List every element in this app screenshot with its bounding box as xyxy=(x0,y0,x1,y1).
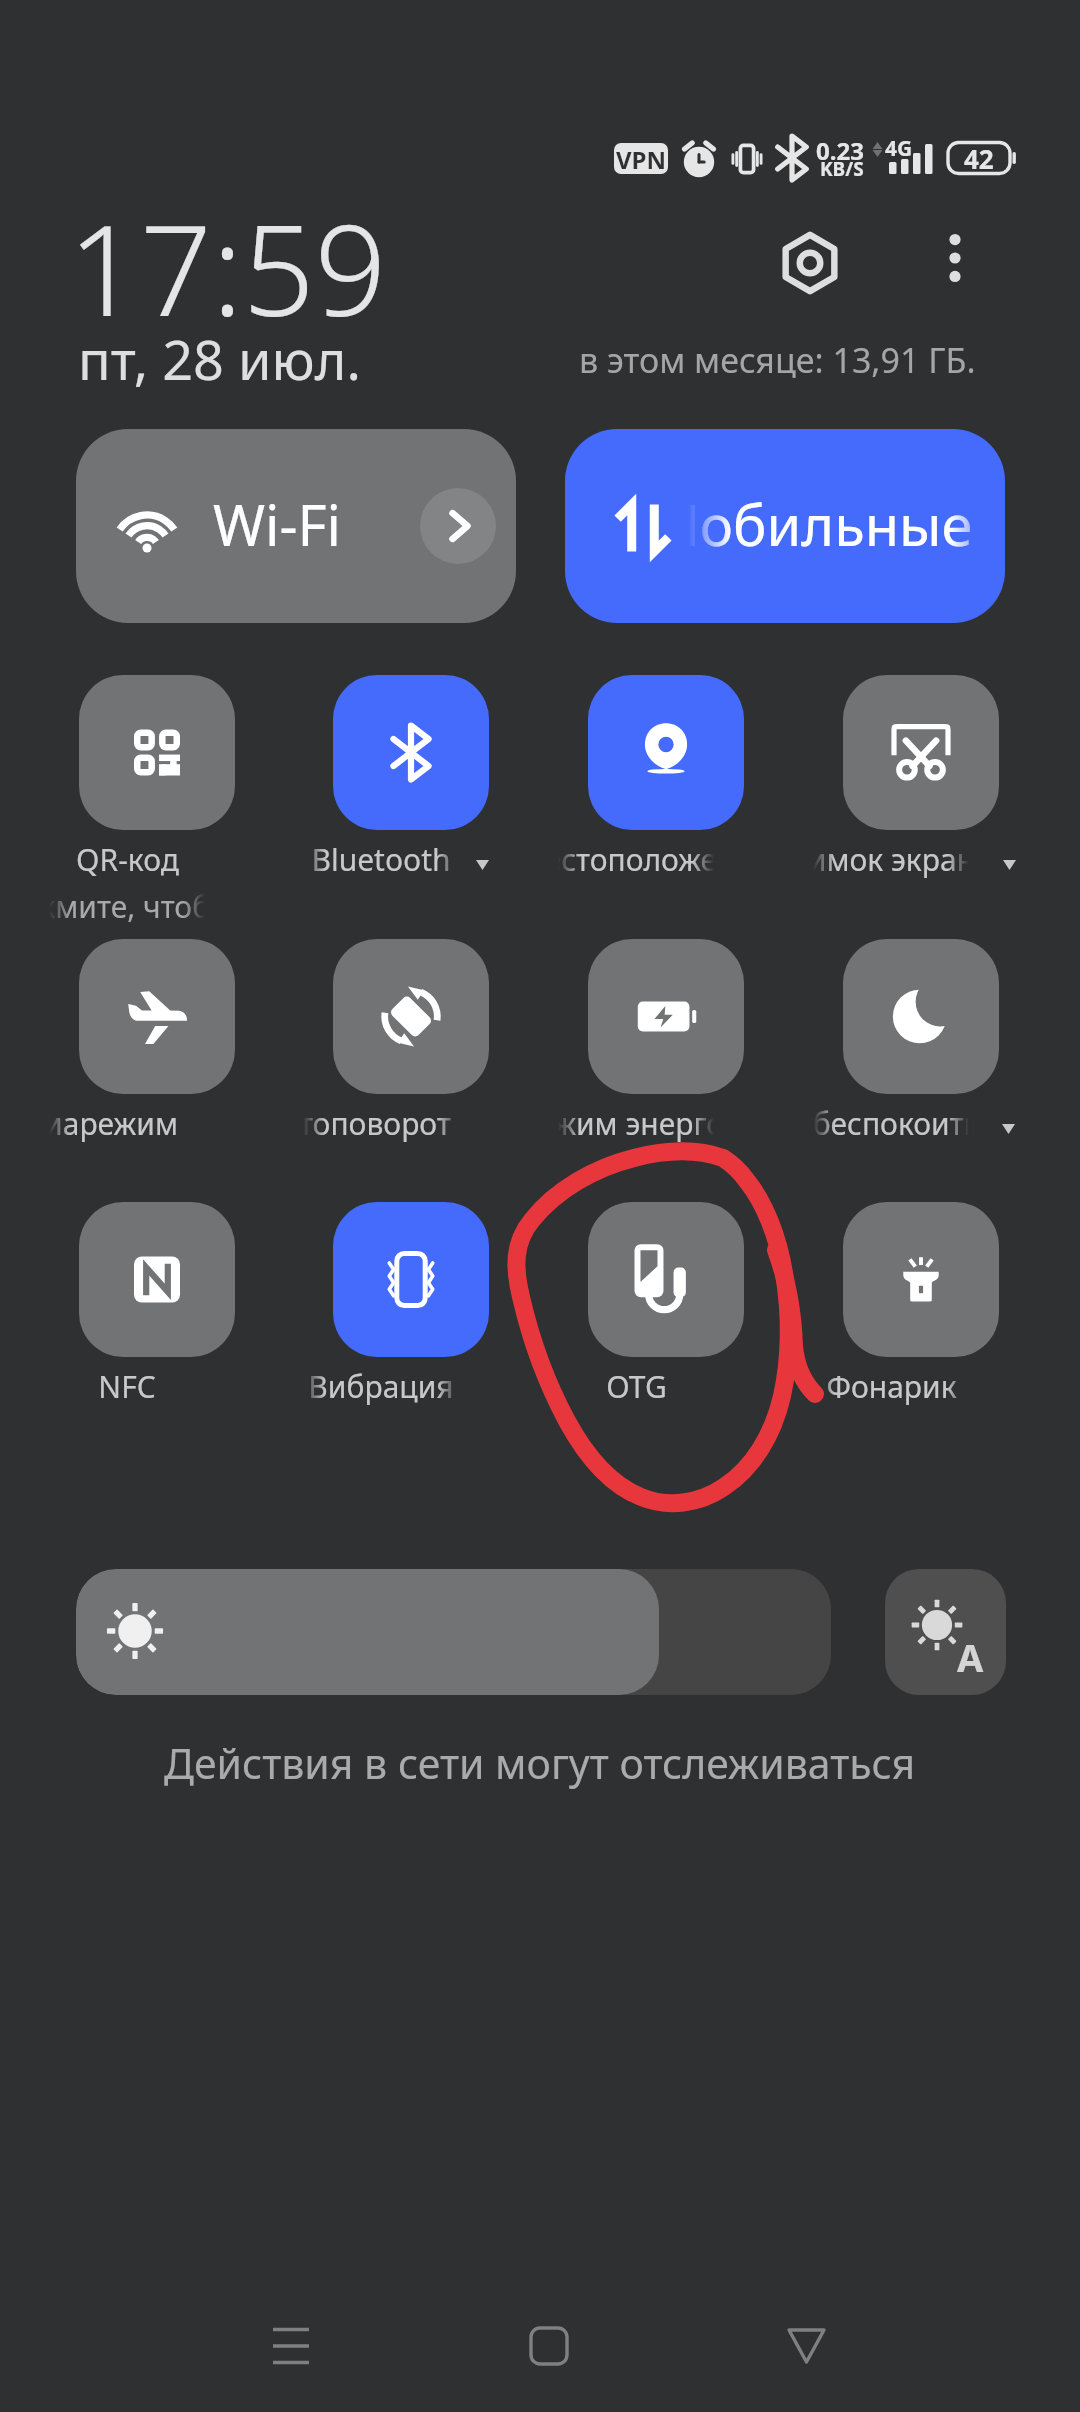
button[interactable]: Back xyxy=(746,2290,866,2405)
staticText: 4G xyxy=(885,134,913,163)
button[interactable]: More options xyxy=(922,225,988,291)
staticText: OTG xyxy=(606,1366,667,1407)
button[interactable]: NFC xyxy=(79,1202,235,1357)
staticText: Режим энергосбережения xyxy=(519,1103,901,1144)
staticText: Фонарик xyxy=(826,1366,957,1407)
staticText: Мобильные xyxy=(649,486,973,562)
staticText: Местоположение xyxy=(517,839,771,880)
staticText: VPN xyxy=(616,143,667,174)
button[interactable]: Местоположение xyxy=(588,675,744,830)
staticText: 17:59 xyxy=(68,181,387,353)
staticText: 0.23 xyxy=(816,134,864,167)
button[interactable]: Wi-Fi settings xyxy=(420,488,496,564)
staticText: Вибрация xyxy=(308,1366,454,1407)
button[interactable]: Автоповорот xyxy=(333,939,489,1094)
button[interactable]: Авиарежим xyxy=(79,939,235,1094)
staticText: Действия в сети могут отслеживаться xyxy=(164,1735,916,1791)
staticText: QR-код xyxy=(76,839,179,880)
staticText: Нажмите, чтобы xyxy=(0,886,233,927)
staticText: A xyxy=(957,1631,984,1683)
staticText: KB/S xyxy=(820,156,864,182)
button[interactable]: OTG xyxy=(588,1202,744,1357)
staticText: Wi-Fi xyxy=(213,486,342,562)
button[interactable]: Auto brightness xyxy=(885,1569,1006,1695)
button[interactable]: Brightness xyxy=(76,1569,831,1695)
staticText: Автоповорот xyxy=(263,1103,451,1144)
button[interactable]: Снимок экрана xyxy=(843,675,999,830)
staticText: 42 xyxy=(964,141,994,176)
button[interactable]: Settings xyxy=(772,225,848,301)
staticText: Авиарежим xyxy=(8,1103,178,1144)
button[interactable]: QR-код xyxy=(79,675,235,830)
staticText: в этом месяце: 13,91 ГБ. xyxy=(579,337,976,383)
button[interactable]: Фонарик xyxy=(843,1202,999,1357)
button[interactable]: Режим энергосбережения xyxy=(588,939,744,1094)
staticText: Bluetooth xyxy=(311,839,451,880)
staticText: Не беспокоить xyxy=(766,1103,980,1144)
button[interactable]: Wi-Fi xyxy=(76,429,516,623)
button[interactable]: Не беспокоить xyxy=(843,939,999,1094)
staticText: пт, 28 июл. xyxy=(78,322,361,396)
button[interactable]: Мобильные данные xyxy=(565,429,1005,623)
staticText: NFC xyxy=(98,1366,156,1407)
button[interactable]: Bluetooth xyxy=(333,675,489,830)
button[interactable]: Recents xyxy=(230,2290,350,2405)
button[interactable]: Home xyxy=(490,2290,610,2405)
staticText: Снимок экрана xyxy=(770,839,992,880)
button[interactable]: Вибрация xyxy=(333,1202,489,1357)
